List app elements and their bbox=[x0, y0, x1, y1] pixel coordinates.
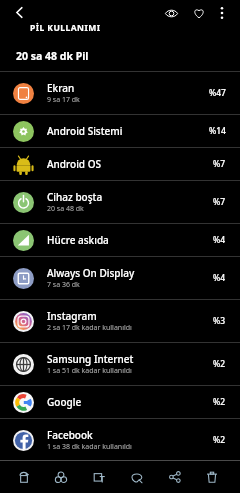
staticText: 7 sa 36 dk bbox=[47, 280, 80, 290]
button[interactable]: Delete bbox=[198, 463, 226, 491]
staticText: Hücre askıda bbox=[47, 233, 109, 247]
button[interactable]: Draw bbox=[123, 463, 151, 491]
staticText: Cihaz boşta bbox=[47, 190, 103, 204]
button[interactable]: Preview bbox=[159, 1, 183, 25]
staticText: %14 bbox=[209, 125, 226, 137]
staticText: Samsung Internet bbox=[47, 352, 134, 366]
staticText: PİL KULLANIMI bbox=[30, 22, 101, 34]
staticText: 2 sa 17 dk kadar kullanıldı bbox=[47, 323, 132, 333]
button[interactable]: Add text bbox=[85, 463, 113, 491]
button[interactable]: Facebook bbox=[0, 419, 240, 461]
button[interactable]: Hücre askıda bbox=[0, 224, 240, 256]
button[interactable]: Filters bbox=[47, 463, 75, 491]
staticText: %2 bbox=[213, 358, 226, 370]
staticText: %7 bbox=[213, 158, 226, 170]
staticText: 1 sa 51 dk kadar kullanıldı bbox=[47, 366, 132, 376]
staticText: %2 bbox=[213, 434, 226, 446]
button[interactable]: Always On Display bbox=[0, 257, 240, 299]
staticText: 1 sa 38 dk kadar kullanıldı bbox=[47, 442, 132, 452]
button[interactable]: Share bbox=[161, 463, 189, 491]
staticText: 9 sa 17 dk bbox=[47, 95, 80, 105]
button[interactable]: Samsung Internet bbox=[0, 343, 240, 385]
button[interactable]: Android Sistemi bbox=[0, 115, 240, 147]
staticText: Ekran bbox=[47, 81, 75, 95]
staticText: %4 bbox=[213, 234, 226, 246]
button[interactable]: Back bbox=[9, 2, 29, 22]
staticText: %2 bbox=[213, 396, 226, 408]
button[interactable]: Instagram bbox=[0, 300, 240, 342]
button[interactable]: Cihaz boşta bbox=[0, 181, 240, 223]
staticText: Facebook bbox=[47, 428, 93, 442]
staticText: Always On Display bbox=[47, 266, 135, 280]
button[interactable]: Google bbox=[0, 386, 240, 418]
staticText: 20 sa 48 dk Pil bbox=[16, 49, 89, 63]
staticText: Instagram bbox=[47, 309, 97, 323]
staticText: Android OS bbox=[47, 157, 101, 171]
staticText: %7 bbox=[213, 196, 226, 208]
button[interactable]: Crop bbox=[10, 463, 38, 491]
staticText: 20 sa 48 dk bbox=[47, 204, 84, 214]
button[interactable]: More options bbox=[210, 1, 234, 25]
staticText: %3 bbox=[213, 315, 226, 327]
button[interactable]: Ekran bbox=[0, 72, 240, 114]
button[interactable]: Android OS bbox=[0, 148, 240, 180]
staticText: Google bbox=[47, 395, 82, 409]
staticText: %47 bbox=[209, 87, 226, 99]
button[interactable]: Favorite bbox=[187, 1, 211, 25]
staticText: %4 bbox=[213, 272, 226, 284]
staticText: Android Sistemi bbox=[47, 124, 123, 138]
